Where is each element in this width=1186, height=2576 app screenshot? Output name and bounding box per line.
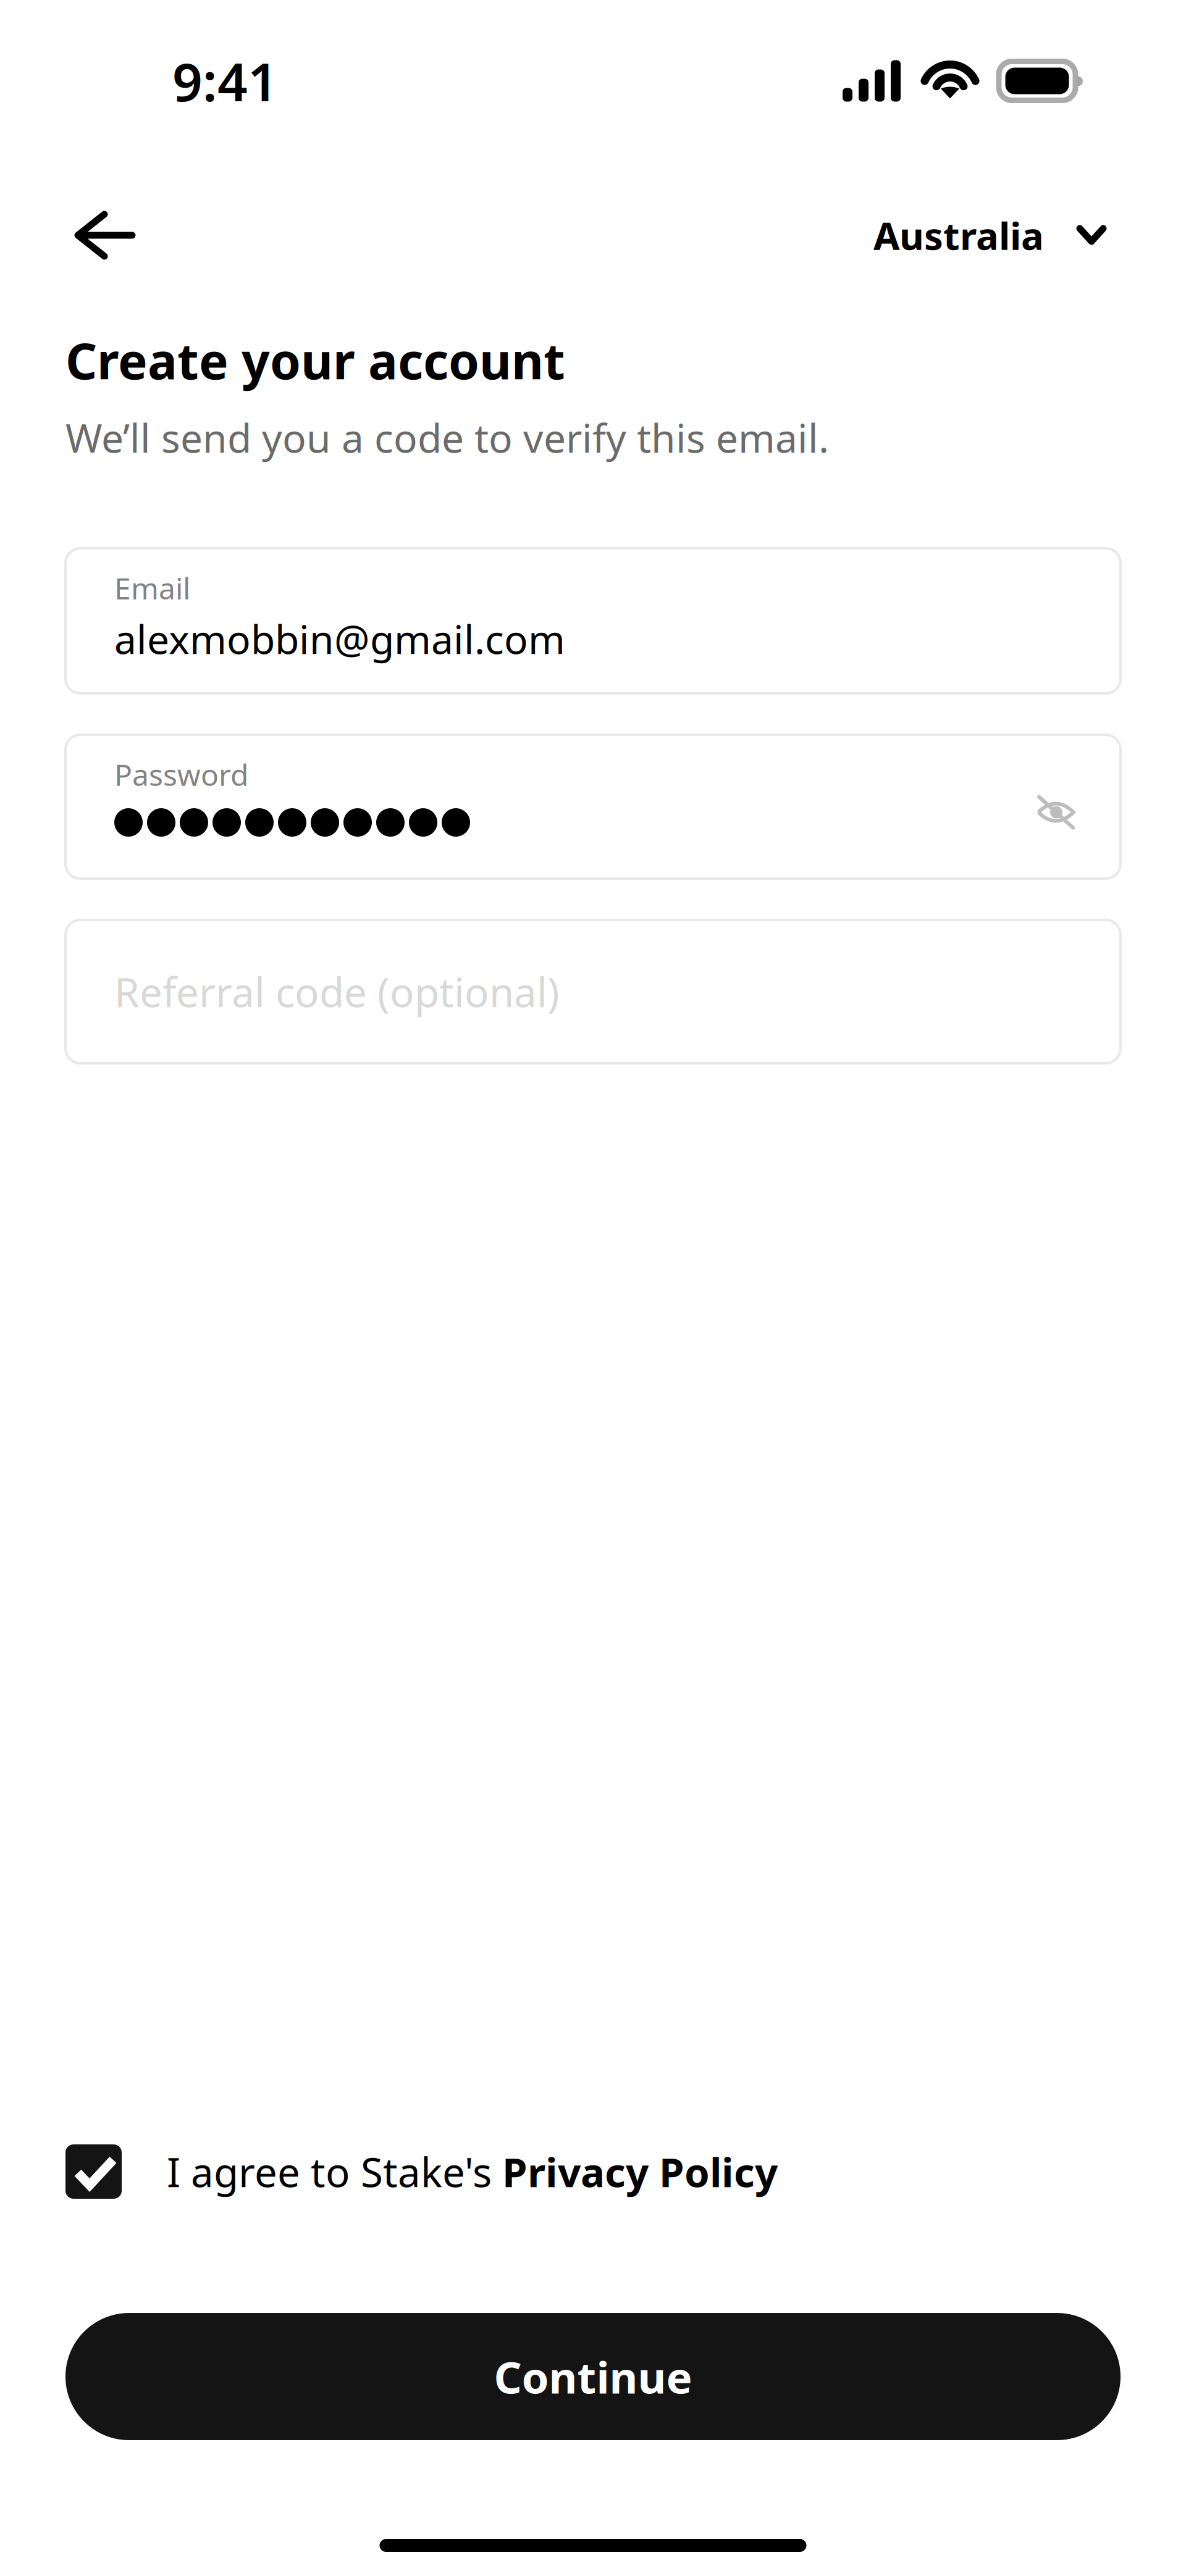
staticText: Password (114, 755, 249, 794)
staticText: alexmobbin@gmail.com (114, 613, 565, 665)
button[interactable]: Australia (873, 198, 1107, 272)
staticText: Create your account (65, 327, 565, 393)
staticText: Privacy Policy (502, 2145, 778, 2198)
button[interactable]: Referral code (optional) (65, 920, 1121, 1063)
button[interactable]: Back (74, 198, 166, 272)
button[interactable]: Email (65, 548, 1121, 693)
staticText: Referral code (optional) (114, 965, 560, 1018)
staticText: 9:41 (172, 46, 278, 116)
staticText: We’ll send you a code to verify this ema… (65, 411, 829, 464)
staticText: Australia (873, 210, 1044, 260)
button[interactable]: Password (65, 735, 1121, 879)
staticText: I agree to Stake's (167, 2145, 502, 2198)
button[interactable]: I agree to Stake's (0, 2144, 1186, 2199)
button[interactable]: Continue (65, 2313, 1121, 2440)
staticText: Email (114, 568, 190, 608)
staticText: Continue (494, 2348, 692, 2406)
button[interactable]: Show password (1019, 775, 1093, 849)
